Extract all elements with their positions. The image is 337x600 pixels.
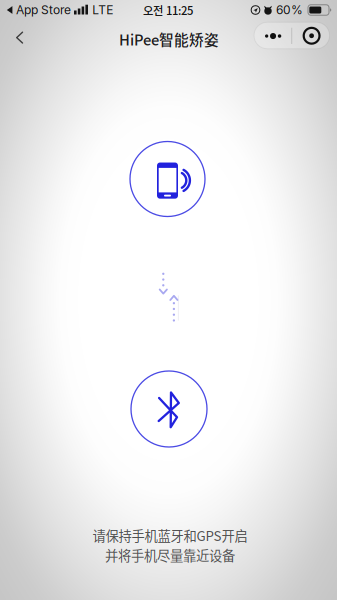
button[interactable]: Close [293,22,330,49]
button[interactable]: More [254,22,292,49]
staticText: 请保持手机蓝牙和GPS开启 [92,525,247,545]
staticText: 并将手机尽量靠近设备 [105,545,235,564]
staticText: 오전 11:25 [143,2,193,18]
staticText: LTE [92,3,113,17]
staticText: App Store [16,3,71,17]
staticText: HiPee智能矫姿 [119,29,219,50]
button[interactable]: Back [3,21,37,55]
staticText: 60% [276,3,303,17]
